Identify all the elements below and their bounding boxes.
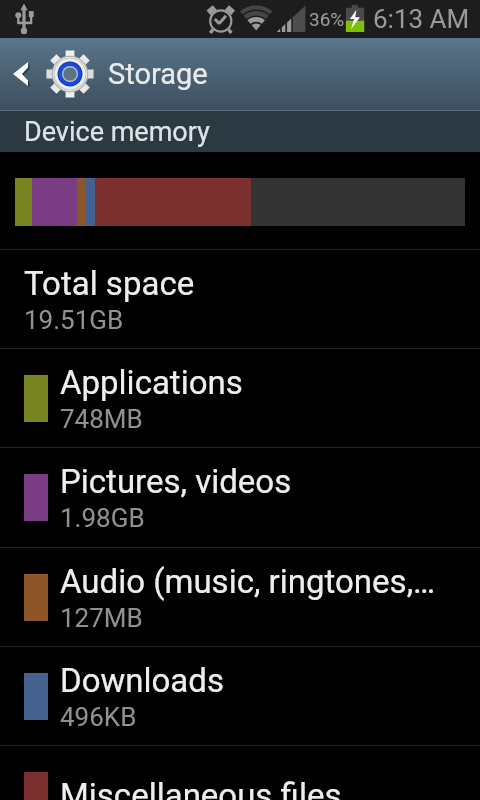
staticText: Total space — [24, 264, 195, 303]
staticText: 19.51GB — [24, 305, 124, 335]
staticText: 496KB — [60, 702, 137, 732]
staticText: 36% — [309, 8, 345, 30]
staticText: Applications — [60, 363, 243, 402]
button[interactable]: Navigate up — [0, 38, 480, 110]
button[interactable]: Pictures, videos — [0, 448, 480, 547]
staticText: Pictures, videos — [60, 462, 292, 501]
staticText: Miscellaneous files — [60, 776, 342, 800]
staticText: 127MB — [60, 603, 143, 633]
staticText: Storage — [108, 57, 208, 91]
button[interactable]: Total space — [0, 250, 480, 348]
button[interactable]: Audio (music, ringtones,… — [0, 548, 480, 646]
staticText: 1.98GB — [60, 503, 145, 533]
other: Navigate up — [13, 62, 28, 86]
staticText: Downloads — [60, 661, 224, 700]
button[interactable]: Downloads — [0, 647, 480, 745]
staticText: 6:13 AM — [373, 4, 470, 34]
staticText: Device memory — [24, 116, 210, 148]
button[interactable]: Miscellaneous files — [0, 746, 480, 800]
staticText: Audio (music, ringtones,… — [60, 562, 436, 601]
button[interactable]: Applications — [0, 349, 480, 447]
staticText: 748MB — [60, 404, 143, 434]
